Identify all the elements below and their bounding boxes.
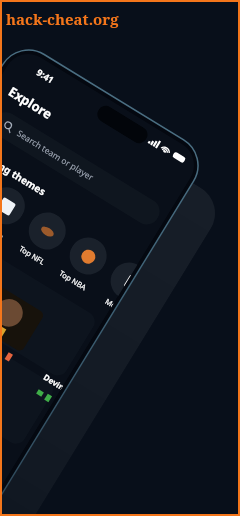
- button[interactable]: Top NBA: [55, 230, 114, 294]
- button[interactable]: Top NFL: [14, 205, 73, 269]
- staticText: Top NFL: [17, 243, 47, 267]
- staticText: Trending themes: [0, 142, 49, 199]
- staticText: Search team or player: [15, 127, 96, 184]
- button[interactable]: Search team or player: [0, 107, 164, 229]
- staticText: 9:41: [35, 66, 56, 85]
- button[interactable]: More: [96, 256, 137, 309]
- button[interactable]: [0, 284, 57, 448]
- staticText: Top NBA: [57, 268, 89, 293]
- button[interactable]: [0, 216, 99, 379]
- staticText: Top clip: [0, 219, 5, 241]
- staticText: hack-cheat.org: [6, 9, 119, 29]
- staticText: Devin: [42, 371, 65, 392]
- button[interactable]: Top clip: [0, 180, 32, 244]
- staticText: More: [103, 296, 115, 309]
- staticText: Explore: [5, 82, 56, 123]
